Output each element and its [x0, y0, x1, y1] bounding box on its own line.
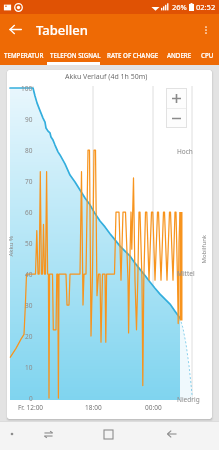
- staticText: 00:00: [145, 403, 162, 412]
- button[interactable]: CPU: [196, 45, 219, 65]
- staticText: CPU: [201, 51, 214, 59]
- staticText: 90: [25, 115, 33, 124]
- button[interactable]: Keyboard switch: [2, 424, 22, 444]
- button[interactable]: Zoom out: [166, 109, 187, 128]
- button[interactable]: Back: [162, 424, 182, 444]
- staticText: TEMPERATUR: [4, 51, 44, 59]
- staticText: 10: [25, 363, 33, 372]
- button[interactable]: Home: [98, 424, 118, 444]
- staticText: Akku %: [7, 235, 14, 256]
- staticText: 0: [29, 394, 33, 403]
- button[interactable]: TELEFON SIGNAL: [47, 45, 103, 65]
- staticText: ANDERE: [167, 51, 192, 59]
- staticText: 100: [21, 84, 33, 93]
- button[interactable]: Back: [0, 14, 31, 45]
- button[interactable]: TEMPERATUR: [0, 45, 47, 65]
- staticText: Akku Verlauf (4d 1h 50m): [65, 72, 148, 82]
- staticText: Hoch: [177, 147, 193, 156]
- staticText: 20: [25, 332, 33, 341]
- staticText: 26%: [172, 2, 187, 12]
- staticText: 60: [25, 208, 33, 217]
- button[interactable]: ANDERE: [163, 45, 196, 65]
- staticText: 02:52: [196, 2, 216, 12]
- staticText: 18:00: [85, 403, 102, 412]
- button[interactable]: RATE OF CHANGE: [103, 45, 163, 65]
- staticText: Mittel: [177, 269, 195, 278]
- staticText: RATE OF CHANGE: [107, 51, 159, 59]
- staticText: Fr. 12:00: [18, 403, 44, 412]
- staticText: TELEFON SIGNAL: [50, 51, 101, 59]
- staticText: 40: [25, 270, 33, 279]
- button[interactable]: Zoom in: [166, 88, 187, 108]
- staticText: 80: [25, 146, 33, 155]
- staticText: Mobilfunk: [199, 234, 207, 263]
- button[interactable]: More options: [193, 17, 219, 43]
- staticText: 70: [25, 177, 33, 186]
- button[interactable]: Recent apps: [38, 424, 58, 444]
- staticText: 30: [25, 301, 33, 310]
- staticText: 50: [25, 239, 33, 248]
- staticText: Tabellen: [36, 21, 88, 39]
- staticText: Niedrig: [177, 395, 200, 404]
